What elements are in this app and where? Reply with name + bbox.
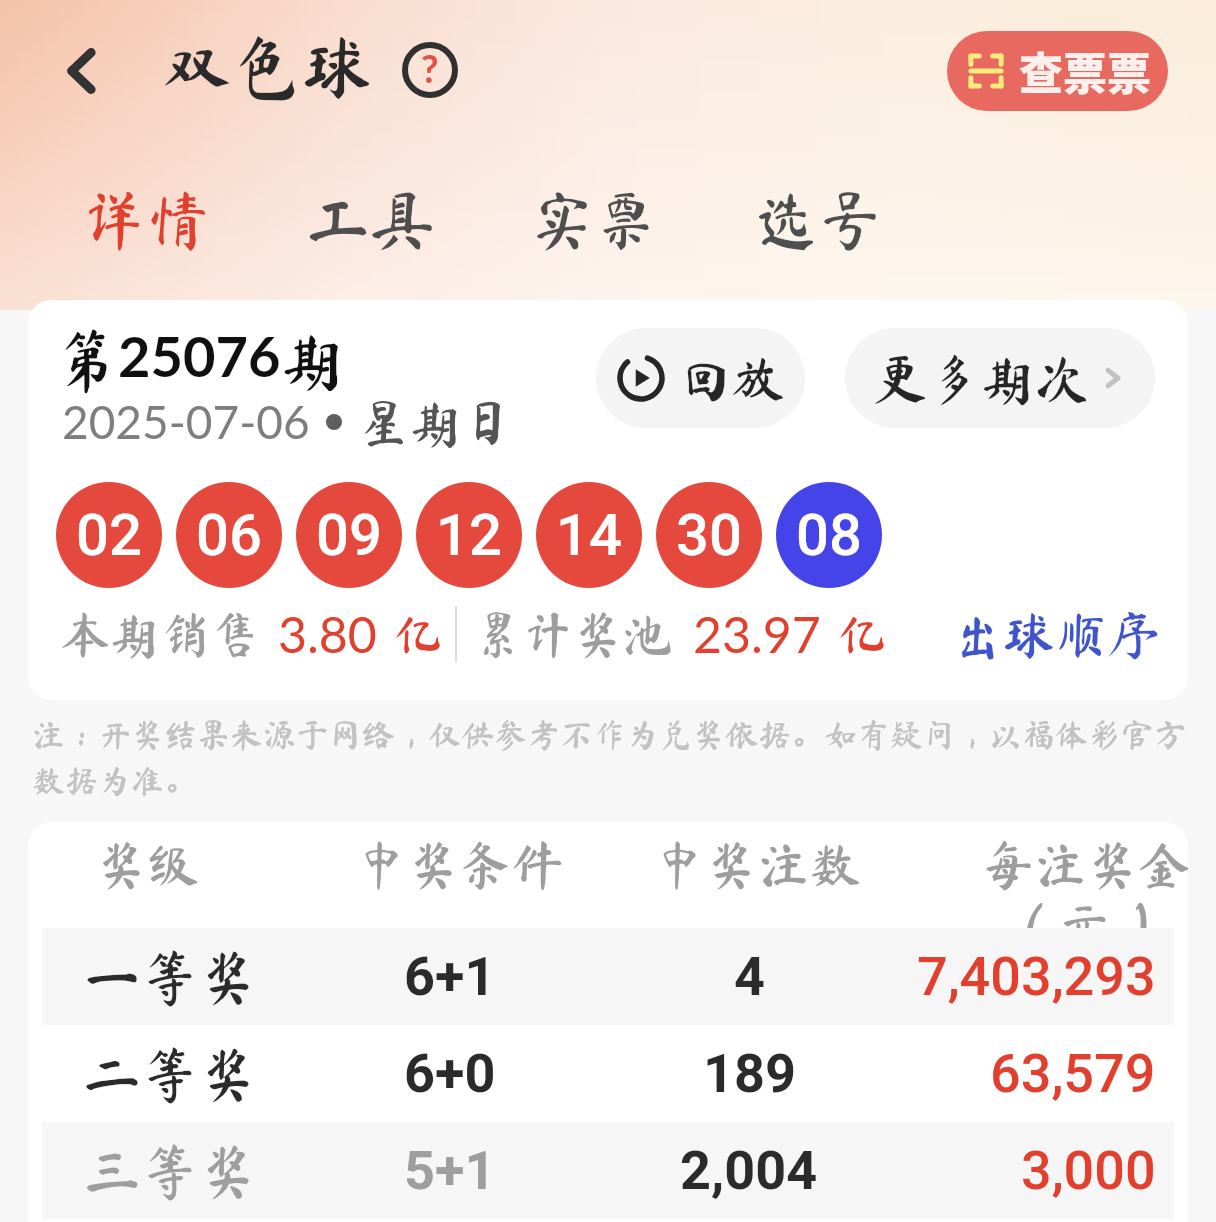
staticText: 三等奖 — [83, 1142, 258, 1200]
staticText: 2,004 — [680, 1139, 818, 1202]
staticText: 6+0 — [404, 1042, 496, 1105]
staticText: 第 — [54, 328, 118, 392]
staticText: 查票票 — [1019, 39, 1151, 103]
staticText: 中奖注数 — [653, 838, 862, 890]
staticText: 14 — [556, 501, 622, 569]
button[interactable]: 选号 — [744, 182, 892, 258]
button[interactable]: 详情 — [72, 182, 220, 258]
button[interactable]: 实票 — [520, 182, 668, 258]
staticText: 详情 — [82, 188, 210, 252]
staticText: 累计奖池 — [473, 609, 673, 659]
staticText: 12 — [436, 501, 502, 569]
button[interactable]: Help — [400, 40, 460, 100]
staticText: 奖级 — [95, 838, 200, 890]
button[interactable]: 工具 — [296, 182, 444, 258]
staticText: 6+1 — [404, 945, 496, 1008]
staticText: 3.80 — [278, 604, 377, 664]
staticText: 23.97 — [693, 604, 821, 664]
staticText: 02 — [76, 501, 142, 569]
staticText: 06 — [196, 501, 262, 569]
staticText: 7,403,293 — [917, 945, 1156, 1008]
staticText: 星期日 — [358, 396, 515, 448]
staticText: 2025-07-06 — [62, 394, 310, 449]
staticText: 本期销售 — [60, 609, 260, 659]
staticText: ? — [421, 45, 439, 91]
staticText: 3,000 — [1021, 1139, 1156, 1202]
staticText: 回放 — [680, 352, 785, 404]
staticText: 25076 — [118, 322, 281, 389]
staticText: 期 — [281, 328, 345, 392]
button[interactable]: 查票票 — [947, 31, 1168, 111]
staticText: 4 — [734, 945, 765, 1008]
staticText: 出球顺序 — [951, 608, 1160, 660]
staticText: 189 — [703, 1042, 796, 1105]
button[interactable]: 更多期次 — [845, 328, 1155, 428]
staticText: 5+1 — [404, 1139, 496, 1202]
staticText: 二等奖 — [83, 1045, 258, 1103]
staticText: 中奖条件 — [355, 838, 564, 890]
staticText: 选号 — [754, 188, 882, 252]
staticText: 63,579 — [990, 1042, 1156, 1105]
staticText: 更多期次 — [873, 351, 1089, 405]
staticText: 08 — [796, 501, 862, 569]
staticText: 一等奖 — [83, 948, 258, 1006]
staticText: 亿 — [393, 609, 443, 659]
staticText: 每注奖金 （元） — [982, 838, 1188, 944]
staticText: 09 — [316, 501, 382, 569]
staticText: 亿 — [837, 609, 887, 659]
staticText: 实票 — [530, 188, 658, 252]
staticText: 双色球 — [162, 31, 372, 101]
staticText: 注：开奖结果来源于网络，仅供参考不作为兑奖依据。如有疑问，以福体彩官方数据为准。 — [32, 718, 1194, 797]
staticText: 工具 — [306, 188, 434, 252]
button[interactable]: 回放 — [596, 328, 805, 428]
button[interactable]: Back — [49, 39, 113, 103]
staticText: 30 — [676, 501, 742, 569]
button[interactable]: 出球顺序 — [945, 602, 1184, 666]
